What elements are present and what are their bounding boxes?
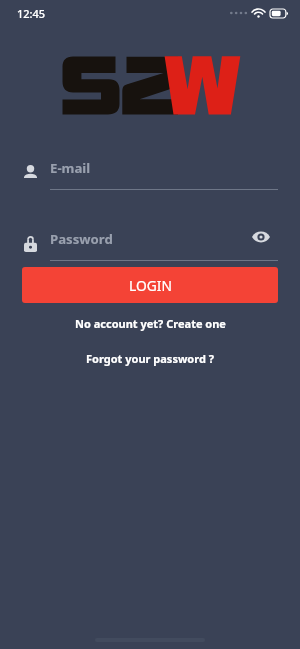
staticText: No account yet? Create one — [75, 316, 226, 331]
staticText: Password — [50, 230, 113, 248]
button[interactable]: Show password — [249, 229, 273, 244]
staticText: E-mail — [50, 159, 91, 177]
button[interactable]: Password — [0, 233, 300, 261]
button[interactable]: Forgot your password ? — [78, 349, 222, 368]
staticText: Forgot your password ? — [86, 351, 214, 366]
button[interactable]: E-mail — [0, 162, 300, 190]
staticText: 12:45 — [17, 6, 46, 21]
button[interactable]: LOGIN — [22, 267, 278, 303]
button[interactable]: No account yet? Create one — [67, 314, 234, 333]
staticText: LOGIN — [129, 276, 172, 295]
